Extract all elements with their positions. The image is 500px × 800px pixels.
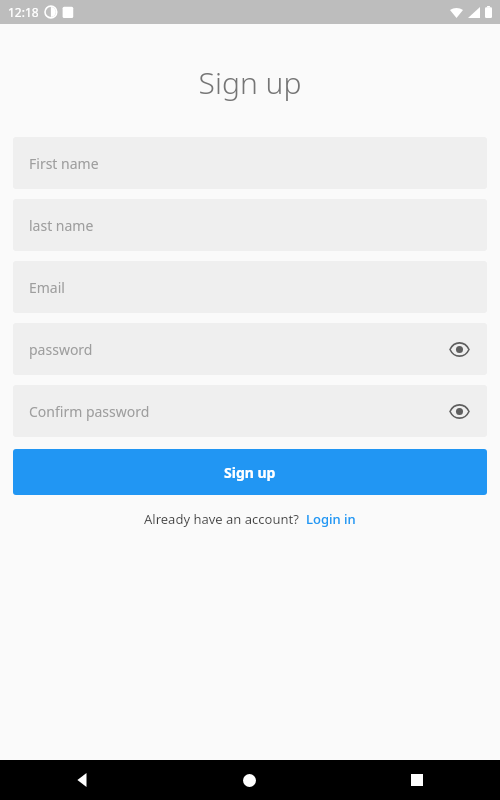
staticText: Already have an account? [144, 510, 299, 528]
button[interactable]: password [13, 323, 487, 375]
button[interactable]: last name [13, 199, 487, 251]
button[interactable]: Toggle password visibility [440, 330, 478, 368]
button[interactable]: Confirm password [13, 385, 487, 437]
staticText: Login in [306, 510, 356, 528]
button[interactable]: Sign up [13, 449, 487, 495]
button[interactable]: Recent apps [333, 760, 500, 800]
staticText: last name [29, 216, 94, 235]
staticText: 12:18 [8, 4, 39, 20]
staticText: Sign up [0, 62, 500, 103]
staticText: First name [29, 154, 99, 173]
button[interactable]: Home [166, 760, 333, 800]
staticText: password [29, 340, 93, 359]
button[interactable]: Back [0, 760, 166, 800]
staticText: Email [29, 278, 65, 297]
button[interactable]: First name [13, 137, 487, 189]
button[interactable]: Email [13, 261, 487, 313]
staticText: Confirm password [29, 402, 150, 421]
button[interactable]: Login in [306, 510, 356, 528]
button[interactable]: Toggle password visibility [440, 392, 478, 430]
staticText: Sign up [224, 463, 276, 482]
